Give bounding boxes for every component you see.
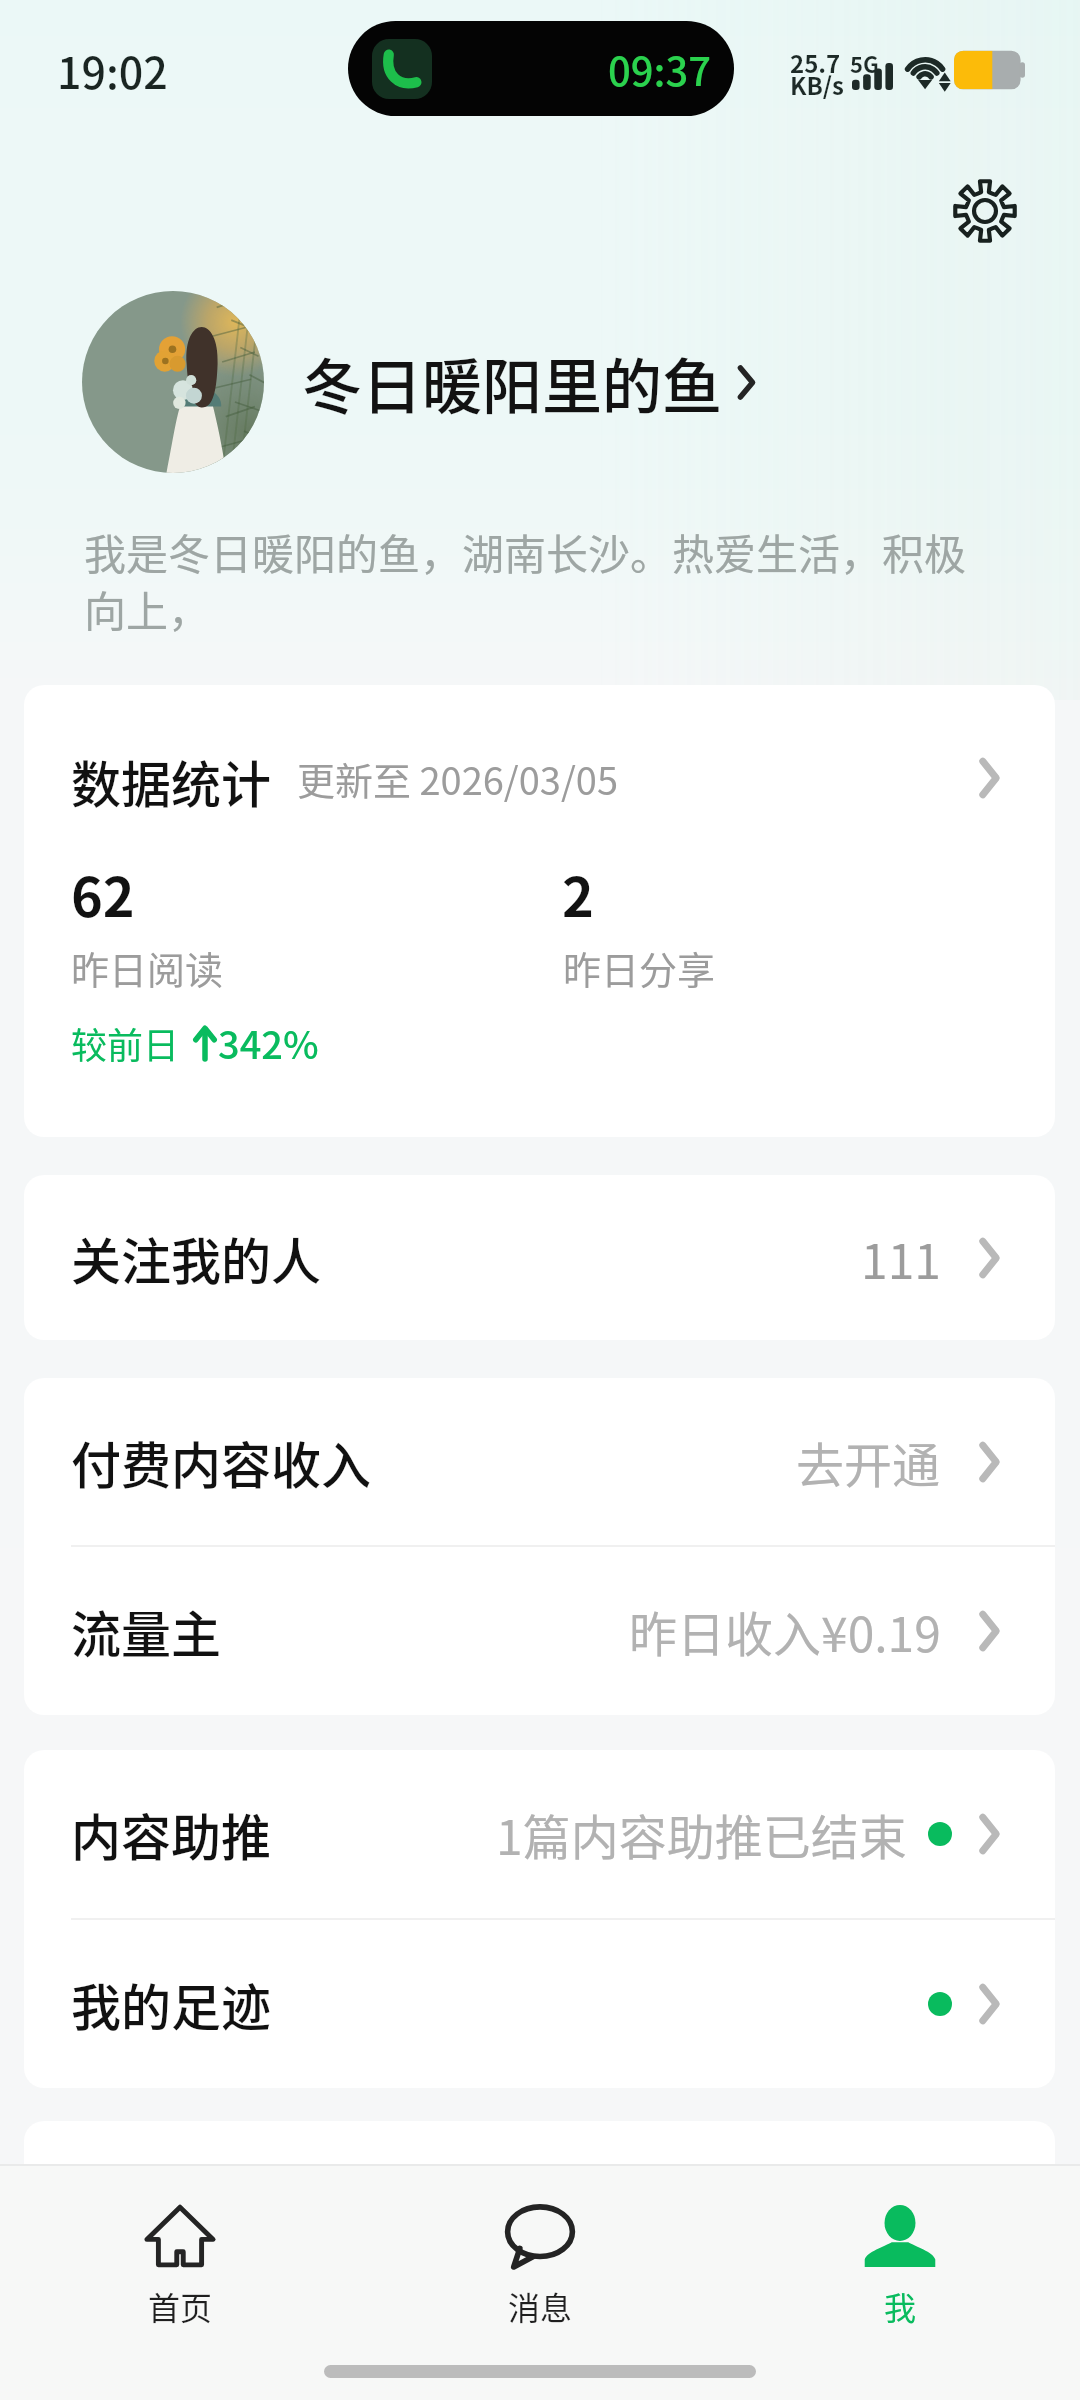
button[interactable]: 消息 <box>360 2164 720 2329</box>
staticText: 流量主 <box>71 1595 221 1667</box>
staticText: 2 <box>562 854 594 932</box>
button[interactable]: 付费内容收入 <box>24 1378 1055 1545</box>
staticText: 19:02 <box>57 39 168 101</box>
staticText: 更新至 2026/03/05 <box>297 751 619 806</box>
staticText: 111 <box>861 1223 941 1293</box>
staticText: 冬日暖阳里的鱼 <box>302 339 722 426</box>
staticText: 消息 <box>508 2283 573 2329</box>
staticText: 我 <box>884 2283 917 2329</box>
staticText: 较前日 <box>71 1017 180 1069</box>
staticText: 09:37 <box>608 40 712 98</box>
button[interactable]: Settings <box>940 166 1030 256</box>
staticText: 付费内容收入 <box>71 1426 371 1498</box>
button[interactable]: 流量主 <box>24 1547 1055 1714</box>
staticText: 数据统计 <box>71 745 271 811</box>
staticText: 昨日收入¥0.19 <box>629 1596 941 1666</box>
staticText: 内容助推 <box>71 1798 271 1870</box>
staticText: 5G <box>850 47 879 79</box>
staticText: 首页 <box>148 2283 213 2329</box>
button[interactable]: 内容助推 <box>24 1750 1055 1918</box>
staticText: 342% <box>218 1015 319 1070</box>
staticText: 昨日分享 <box>563 940 716 995</box>
button[interactable]: 首页 <box>0 2164 360 2329</box>
staticText: 62 <box>71 854 135 932</box>
staticText: 去开通 <box>796 1427 941 1497</box>
button[interactable]: 我的足迹 <box>24 1920 1055 2088</box>
staticText: 关注我的人 <box>71 1222 321 1294</box>
button[interactable]: 关注我的人 <box>24 1175 1055 1340</box>
button[interactable]: 冬日暖阳里的鱼 <box>82 291 782 473</box>
staticText: 我的足迹 <box>71 1968 271 2040</box>
button[interactable]: 我 <box>720 2164 1080 2329</box>
button[interactable]: 数据统计 <box>24 745 1055 811</box>
staticText: 1篇内容助推已结束 <box>496 1799 907 1869</box>
staticText: 昨日阅读 <box>71 940 224 995</box>
staticText: KB/s <box>790 67 844 102</box>
staticText: 25.7 <box>790 45 841 80</box>
staticText: 我是冬日暖阳的鱼，湖南长沙。热爱生活，积极向上， <box>84 521 974 640</box>
